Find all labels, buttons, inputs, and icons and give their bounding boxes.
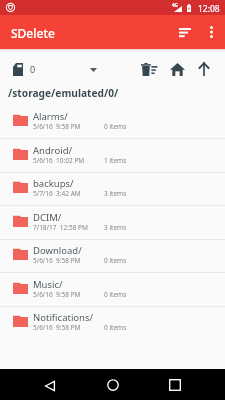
staticText: Android/	[33, 144, 73, 157]
button[interactable]: Back	[30, 372, 70, 397]
staticText: 0 items	[104, 290, 127, 299]
staticText: Music/	[33, 278, 63, 291]
button[interactable]: Alarms/	[0, 105, 225, 139]
staticText: 0 items	[104, 256, 127, 265]
staticText: 5/6/16 10:02 PM	[33, 156, 85, 165]
staticText: Alarms/	[33, 110, 68, 123]
button[interactable]: More options	[198, 19, 224, 45]
staticText: Download/	[33, 244, 82, 257]
button[interactable]: Delete list	[136, 57, 162, 81]
button[interactable]: Home	[93, 372, 133, 397]
staticText: 5/6/16 9:58 PM	[33, 290, 81, 299]
staticText: 5/6/16 9:58 PM	[33, 323, 81, 332]
button[interactable]: Android/	[0, 139, 225, 173]
button[interactable]: DCIM/	[0, 206, 225, 240]
staticText: 5/6/16 9:58 PM	[33, 256, 81, 265]
staticText: 5/6/16 9:58 PM	[33, 122, 81, 131]
staticText: 1 items	[104, 156, 127, 165]
button[interactable]: Go up	[192, 57, 216, 81]
button[interactable]: Recents	[155, 372, 195, 397]
staticText: 7/18/17 12:58 PM	[33, 223, 88, 232]
staticText: /storage/emulated/0/	[8, 86, 119, 100]
button[interactable]: Select storage	[8, 58, 102, 79]
staticText: SDelete	[11, 25, 55, 41]
button[interactable]: Music/	[0, 273, 225, 307]
staticText: 3 items	[104, 223, 127, 232]
staticText: backups/	[33, 177, 74, 190]
button[interactable]: Download/	[0, 239, 225, 273]
staticText: 0	[30, 63, 36, 75]
staticText: DCIM/	[33, 211, 62, 224]
button[interactable]: Notifications/	[0, 306, 225, 340]
button[interactable]: Home	[165, 57, 189, 81]
staticText: 12:08	[198, 3, 220, 15]
staticText: 5/7/16 3:42 AM	[33, 189, 81, 198]
staticText: 0 items	[104, 122, 127, 131]
button[interactable]: backups/	[0, 172, 225, 206]
staticText: Notifications/	[33, 311, 94, 324]
staticText: 3 items	[104, 189, 127, 198]
staticText: 0 items	[104, 323, 127, 332]
staticText: 4G	[172, 2, 178, 8]
button[interactable]: Sort	[172, 19, 198, 45]
